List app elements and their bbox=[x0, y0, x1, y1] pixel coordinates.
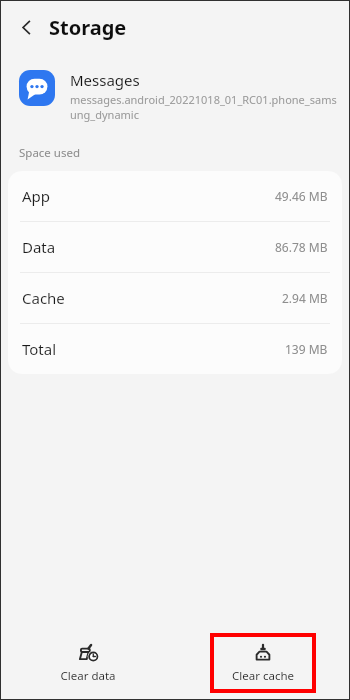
staticText: Storage bbox=[49, 14, 127, 41]
staticText: messages.android_20221018_01_RC01.phone_… bbox=[70, 92, 340, 122]
button[interactable]: Total bbox=[8, 324, 342, 374]
button[interactable]: Cache bbox=[8, 273, 342, 323]
staticText: Clear cache bbox=[232, 668, 294, 684]
staticText: App bbox=[22, 186, 51, 206]
button[interactable]: Clear cache bbox=[210, 633, 316, 693]
staticText: 139 MB bbox=[285, 341, 328, 357]
staticText: Cache bbox=[22, 288, 65, 308]
staticText: Messages bbox=[70, 70, 140, 90]
staticText: Total bbox=[22, 339, 57, 359]
button[interactable]: Back bbox=[8, 9, 44, 45]
button[interactable]: Data bbox=[8, 222, 342, 272]
staticText: 86.78 MB bbox=[275, 239, 328, 255]
staticText: Clear data bbox=[60, 668, 116, 684]
staticText: Space used bbox=[19, 145, 81, 161]
button[interactable]: Clear data bbox=[35, 633, 141, 693]
staticText: 2.94 MB bbox=[282, 290, 328, 306]
button[interactable]: App bbox=[8, 171, 342, 221]
staticText: 49.46 MB bbox=[275, 188, 328, 204]
staticText: Data bbox=[22, 237, 56, 257]
